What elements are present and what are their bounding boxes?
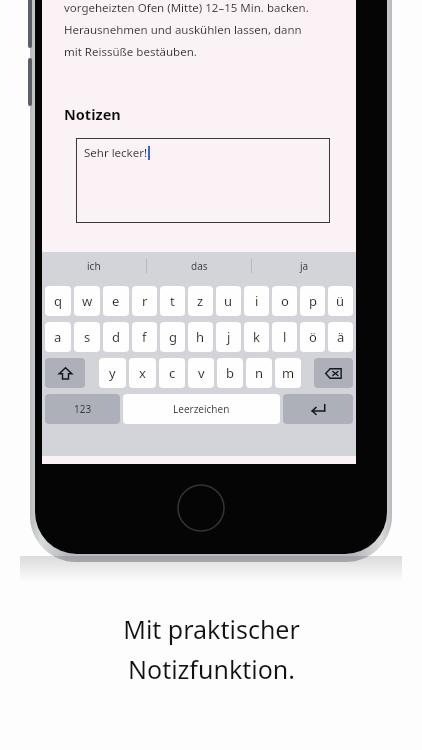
button[interactable]: z (188, 286, 213, 316)
staticText: 123 (74, 402, 92, 416)
button[interactable]: ä (328, 322, 353, 352)
button[interactable]: y (99, 358, 126, 388)
staticText: ja (300, 259, 309, 273)
button[interactable]: s (74, 322, 100, 352)
staticText: ich (87, 259, 101, 273)
button[interactable]: ja (252, 252, 356, 280)
staticText: e (112, 292, 120, 310)
staticText: s (84, 328, 91, 346)
staticText: h (196, 328, 205, 346)
button[interactable]: r (132, 286, 157, 316)
button[interactable]: das (147, 252, 251, 280)
staticText: m (282, 364, 295, 382)
button[interactable]: o (272, 286, 297, 316)
staticText: l (283, 328, 287, 346)
button[interactable]: Sehr lecker! (76, 138, 330, 223)
staticText: y (109, 364, 116, 382)
button[interactable]: t (160, 286, 185, 316)
staticText: o (281, 292, 289, 310)
staticText: ö (309, 328, 317, 346)
staticText: r (142, 292, 148, 310)
staticText: p (309, 292, 317, 310)
staticText: f (142, 328, 147, 346)
staticText: vorgeheizten Ofen (Mitte) 12–15 Min. bac… (64, 0, 309, 16)
staticText: t (170, 292, 175, 310)
button[interactable]: q (45, 286, 71, 316)
staticText: ü (336, 292, 345, 310)
button[interactable]: w (74, 286, 100, 316)
staticText: mit Reissüße bestäuben. (64, 44, 197, 60)
button[interactable]: d (103, 322, 129, 352)
button[interactable]: f (132, 322, 157, 352)
button[interactable]: Shift (45, 358, 85, 388)
button[interactable]: c (159, 358, 185, 388)
button[interactable]: Backspace (314, 358, 353, 388)
staticText: a (54, 328, 62, 346)
button[interactable]: Return (283, 394, 353, 424)
staticText: n (255, 364, 264, 382)
staticText: Herausnehmen und auskühlen lassen, dann (64, 22, 302, 38)
button[interactable]: ö (300, 322, 325, 352)
button[interactable]: k (244, 322, 269, 352)
button[interactable]: b (217, 358, 243, 388)
button[interactable]: ü (328, 286, 353, 316)
staticText: c (169, 364, 176, 382)
staticText: das (191, 259, 208, 273)
staticText: Sehr lecker! (84, 145, 148, 161)
button[interactable]: ich (42, 252, 146, 280)
button[interactable]: u (216, 286, 241, 316)
staticText: z (197, 292, 204, 310)
button[interactable]: a (45, 322, 71, 352)
button[interactable]: Leerzeichen (123, 394, 280, 424)
button[interactable]: g (160, 322, 185, 352)
button[interactable]: m (275, 358, 301, 388)
staticText: Notizfunktion. (128, 652, 295, 686)
button[interactable]: j (216, 322, 241, 352)
button[interactable]: x (129, 358, 156, 388)
button[interactable]: v (188, 358, 214, 388)
staticText: Mit praktischer (123, 612, 300, 646)
button[interactable]: p (300, 286, 325, 316)
staticText: j (227, 328, 231, 346)
staticText: k (253, 328, 260, 346)
staticText: x (139, 364, 146, 382)
button[interactable]: h (188, 322, 213, 352)
button[interactable]: l (272, 322, 297, 352)
staticText: u (224, 292, 233, 310)
staticText: Notizen (64, 104, 121, 124)
staticText: d (112, 328, 120, 346)
staticText: i (255, 292, 259, 310)
staticText: ä (337, 328, 345, 346)
button[interactable]: e (103, 286, 129, 316)
staticText: g (169, 328, 177, 346)
staticText: q (54, 292, 62, 310)
staticText: v (198, 364, 205, 382)
staticText: b (226, 364, 234, 382)
staticText: w (82, 292, 93, 310)
button[interactable]: 123 (45, 394, 120, 424)
button[interactable]: n (246, 358, 272, 388)
staticText: Leerzeichen (173, 402, 230, 416)
button[interactable]: i (244, 286, 269, 316)
